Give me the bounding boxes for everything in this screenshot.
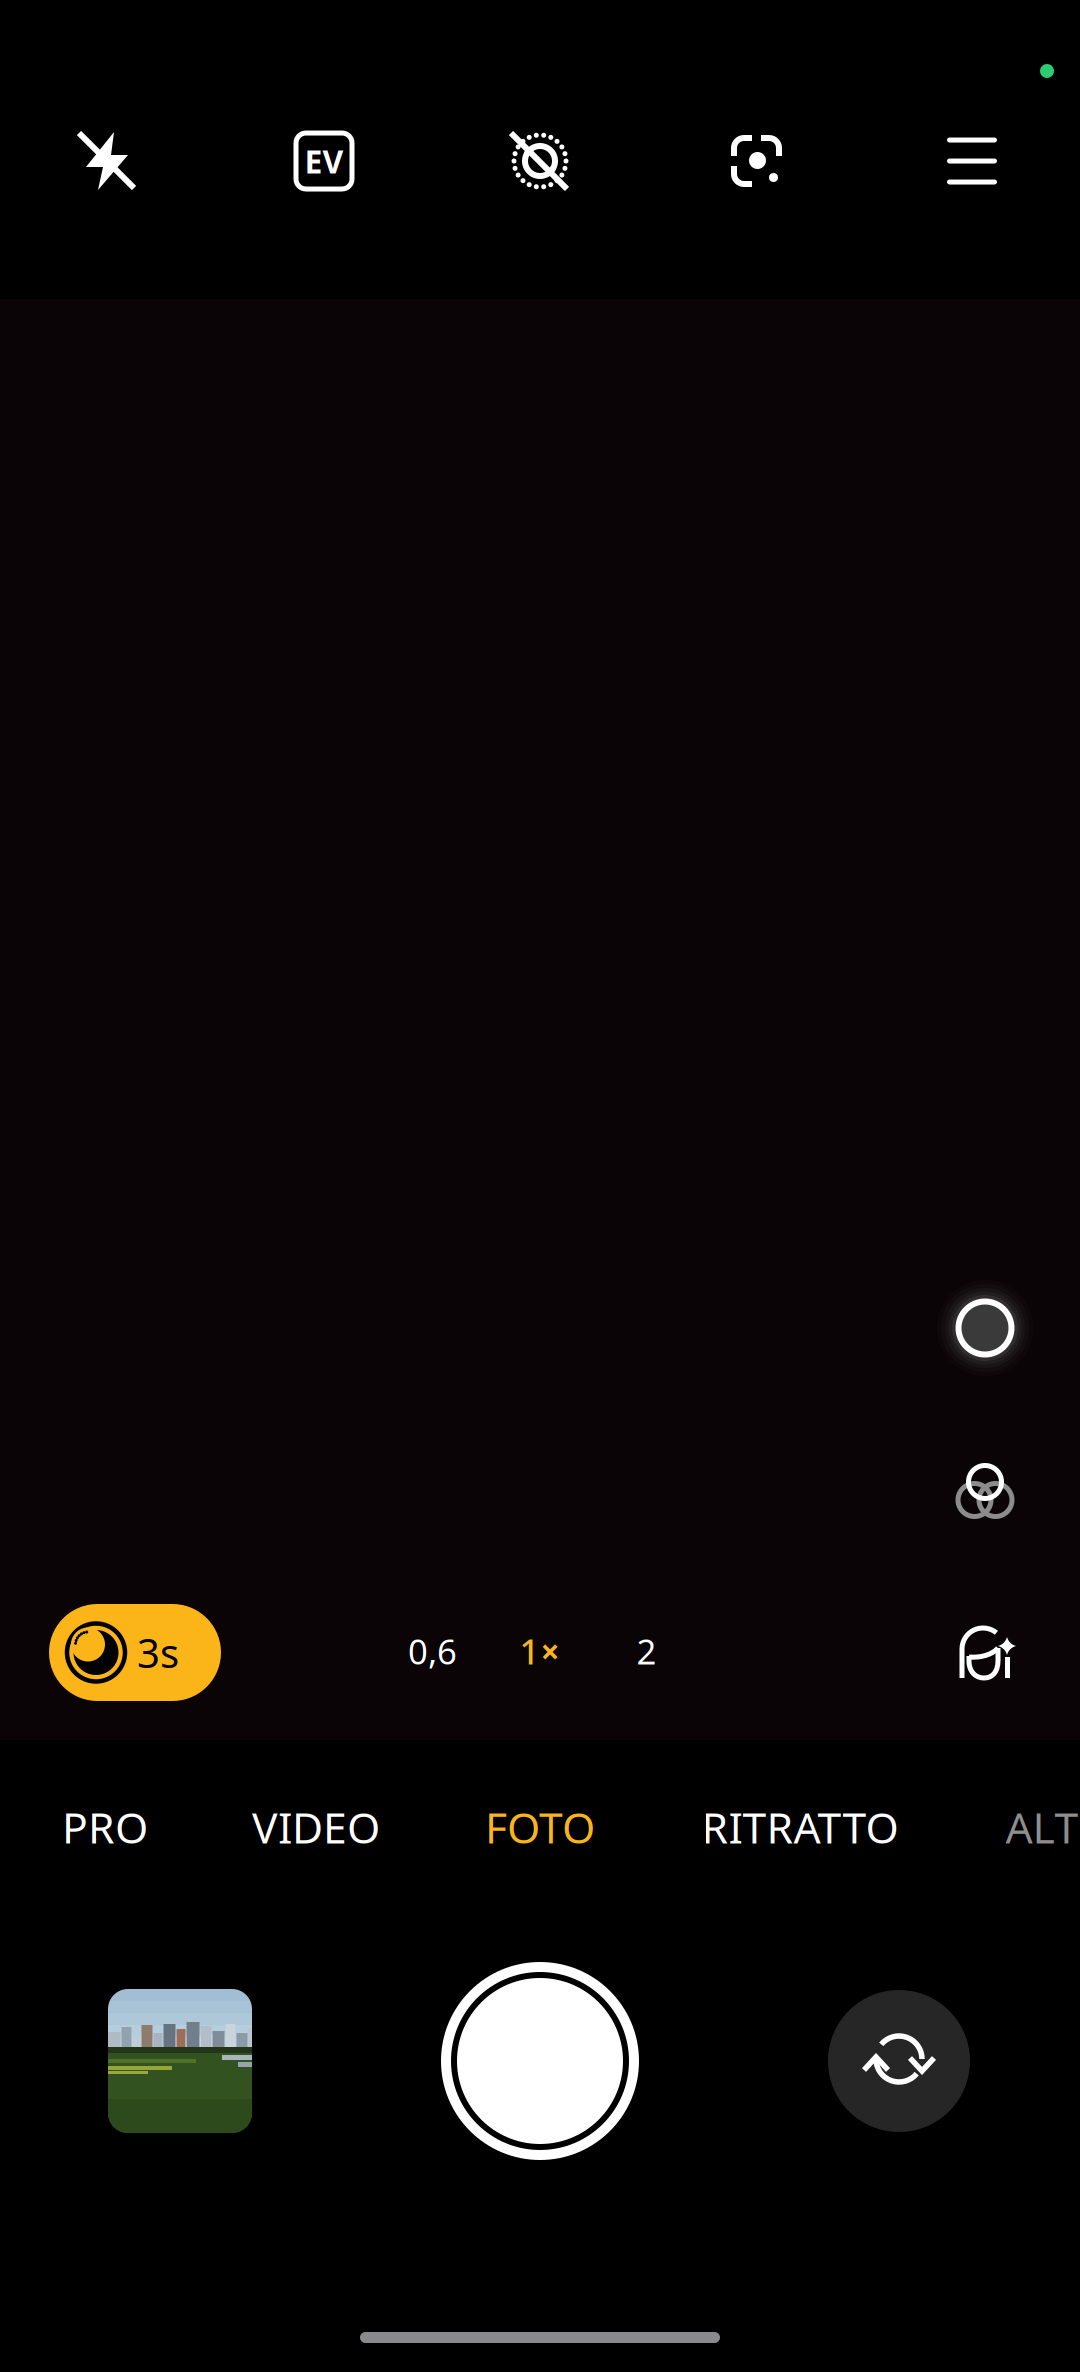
button[interactable]: Flash off: [76, 129, 140, 193]
staticText: FOTO: [485, 1799, 595, 1855]
button[interactable]: Scan: [724, 129, 788, 193]
button[interactable]: Filters: [955, 1461, 1015, 1521]
button[interactable]: PRO: [0, 1788, 235, 1866]
button[interactable]: RITRATTO: [670, 1788, 930, 1866]
button[interactable]: 1: [486, 1618, 593, 1684]
button[interactable]: 2: [593, 1618, 700, 1684]
button[interactable]: More settings: [940, 129, 1004, 193]
button[interactable]: Exposure: [937, 1280, 1033, 1376]
button[interactable]: Shutter: [441, 1962, 639, 2160]
button[interactable]: ALTRO: [942, 1788, 1080, 1866]
staticText: ×: [540, 1629, 559, 1673]
button[interactable]: Exposure compensation: [292, 129, 356, 193]
button[interactable]: Beauty: [959, 1625, 1017, 1683]
staticText: VIDEO: [252, 1799, 380, 1855]
staticText: PRO: [62, 1799, 148, 1855]
staticText: 3s: [137, 1626, 179, 1679]
button[interactable]: Gallery: [108, 1989, 252, 2133]
staticText: 2: [636, 1628, 656, 1674]
staticText: ALTRO: [1005, 1799, 1080, 1855]
button[interactable]: VIDEO: [186, 1788, 446, 1866]
button[interactable]: AI photography off: [508, 129, 572, 193]
button[interactable]: 3s: [49, 1604, 221, 1701]
button[interactable]: 0,6: [379, 1618, 486, 1684]
staticText: RITRATTO: [701, 1799, 898, 1855]
button[interactable]: FOTO: [410, 1788, 670, 1866]
staticText: 0,6: [408, 1628, 457, 1674]
button[interactable]: Switch camera: [828, 1990, 970, 2132]
staticText: 1: [519, 1628, 539, 1674]
staticText: EV: [304, 140, 343, 182]
